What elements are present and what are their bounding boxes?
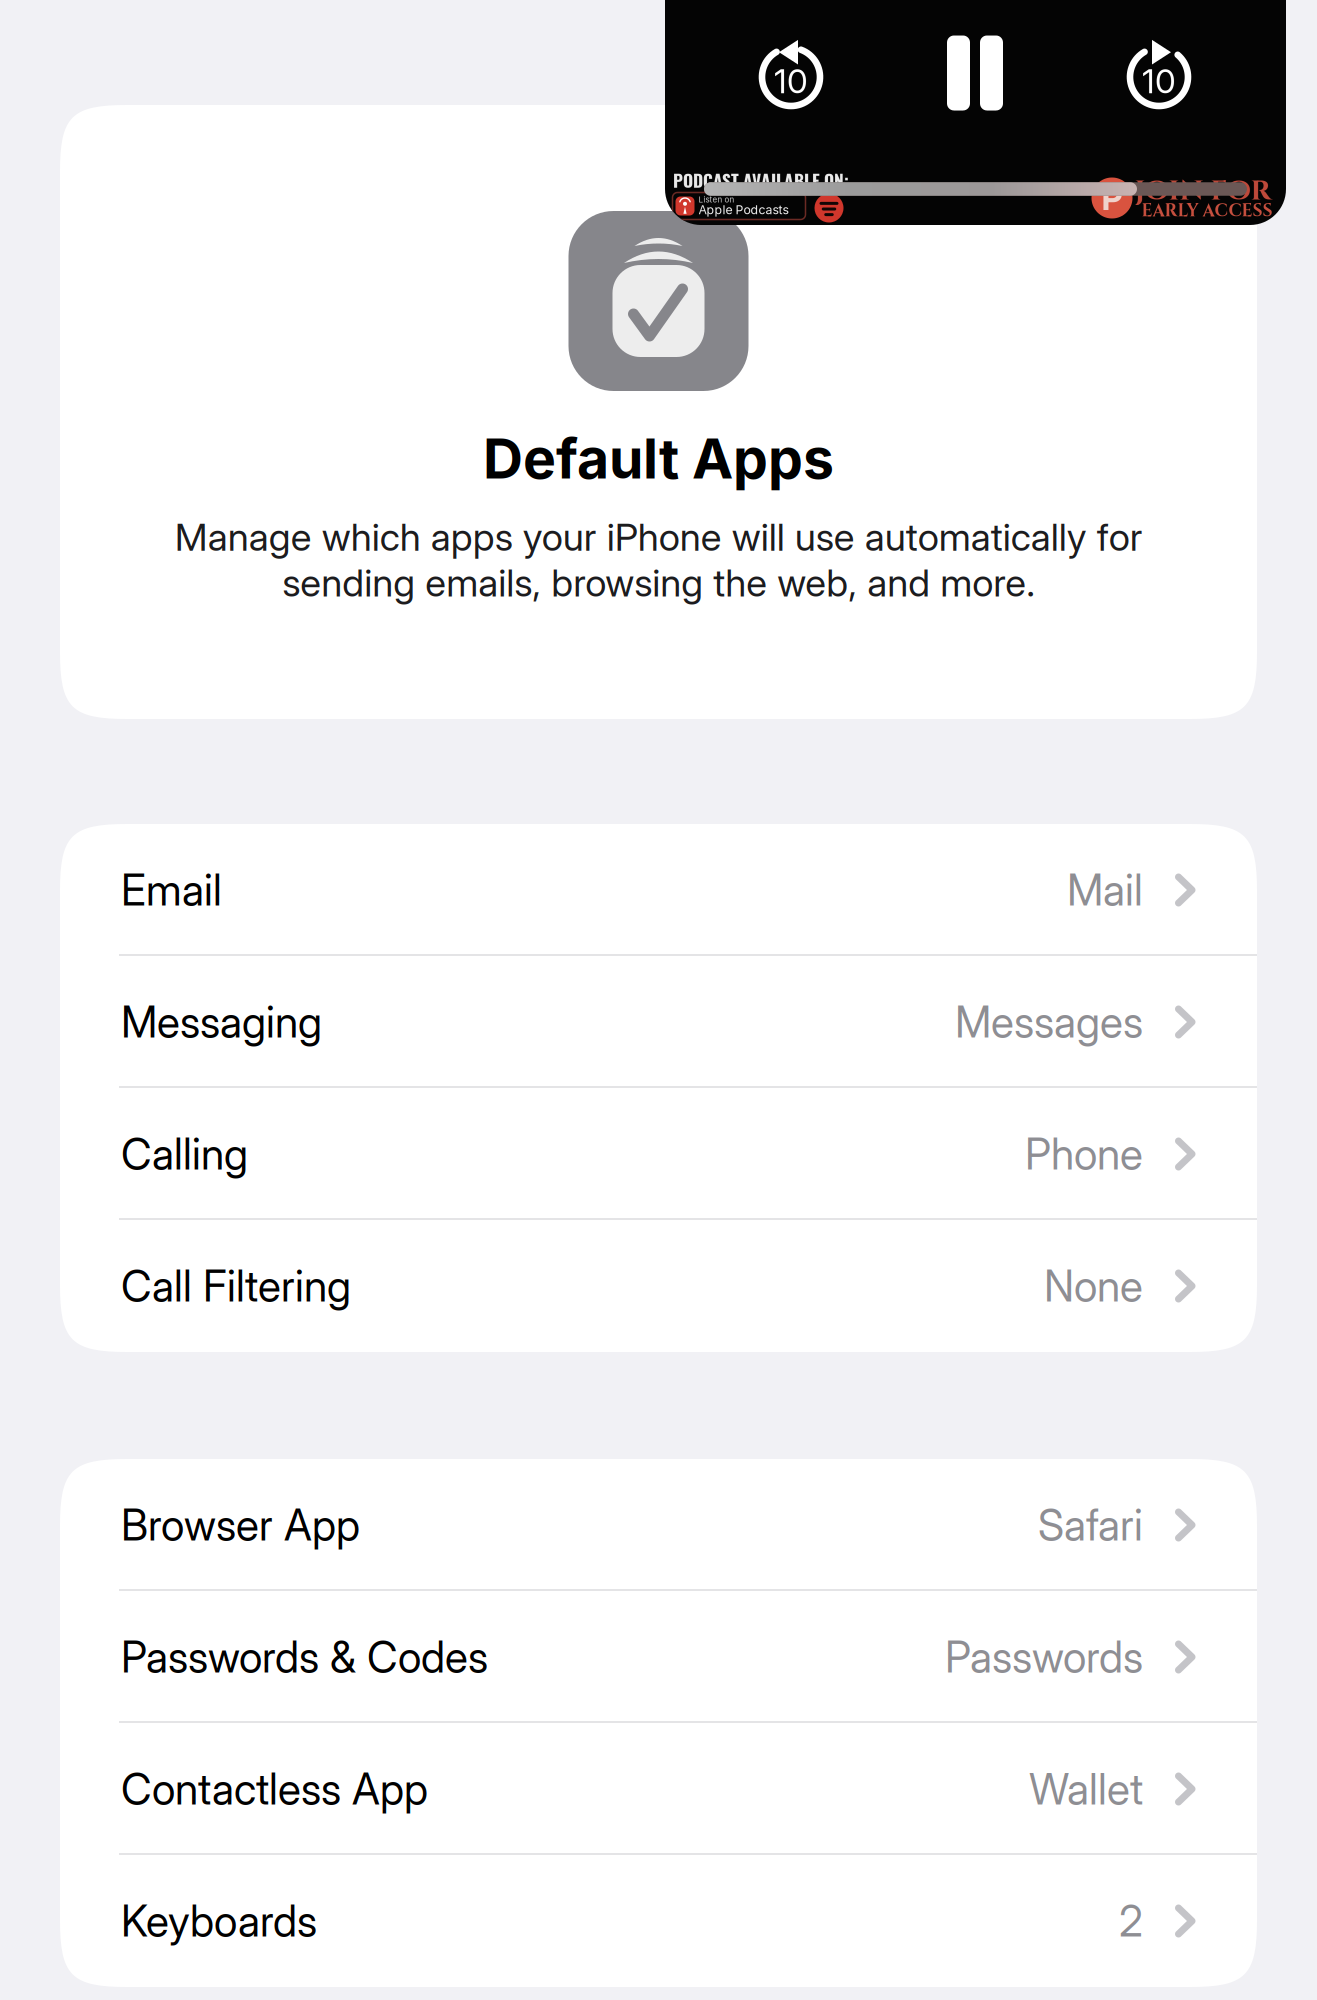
staticText: Passwords & Codes xyxy=(121,1631,488,1683)
staticText: Wallet xyxy=(1029,1763,1143,1815)
staticText: P xyxy=(1101,178,1122,218)
staticText: Listen on xyxy=(698,195,734,204)
staticText: Messaging xyxy=(121,996,322,1048)
button[interactable]: Call Filtering xyxy=(60,1220,1257,1352)
button[interactable]: Contactless App xyxy=(60,1723,1257,1855)
button[interactable]: Pause xyxy=(947,35,1003,110)
staticText: Passwords xyxy=(945,1631,1143,1683)
staticText: Safari xyxy=(1038,1499,1143,1551)
staticText: Manage which apps your iPhone will use a… xyxy=(174,514,1142,606)
button[interactable]: Skip forward 10 seconds xyxy=(1114,32,1204,122)
button[interactable]: Keyboards xyxy=(60,1855,1257,1987)
staticText: Calling xyxy=(121,1128,248,1180)
staticText: JOIN FOR xyxy=(1134,172,1271,210)
staticText: EARLY ACCESS xyxy=(1141,199,1272,223)
staticText: Keyboards xyxy=(121,1895,317,1947)
staticText: Contactless App xyxy=(121,1763,428,1815)
staticText: Default Apps xyxy=(483,425,834,492)
button[interactable]: Email xyxy=(60,824,1257,956)
staticText: 10 xyxy=(1142,61,1176,101)
button[interactable]: Messaging xyxy=(60,956,1257,1088)
staticText: Email xyxy=(121,864,222,916)
staticText: Apple Podcasts xyxy=(698,202,788,217)
button[interactable]: Skip back 10 seconds xyxy=(746,32,836,122)
staticText: Messages xyxy=(955,996,1143,1048)
button[interactable]: Calling xyxy=(60,1088,1257,1220)
button[interactable]: Passwords & Codes xyxy=(60,1591,1257,1723)
staticText: PODCAST AVAILABLE ON: xyxy=(673,167,849,193)
staticText: Mail xyxy=(1067,864,1143,916)
staticText: Phone xyxy=(1025,1128,1143,1180)
button[interactable]: Browser App xyxy=(60,1459,1257,1591)
staticText: Browser App xyxy=(121,1499,360,1551)
staticText: 2 xyxy=(1119,1895,1143,1947)
staticText: None xyxy=(1044,1260,1143,1312)
staticText: Call Filtering xyxy=(121,1260,351,1312)
staticText: 10 xyxy=(774,61,808,101)
